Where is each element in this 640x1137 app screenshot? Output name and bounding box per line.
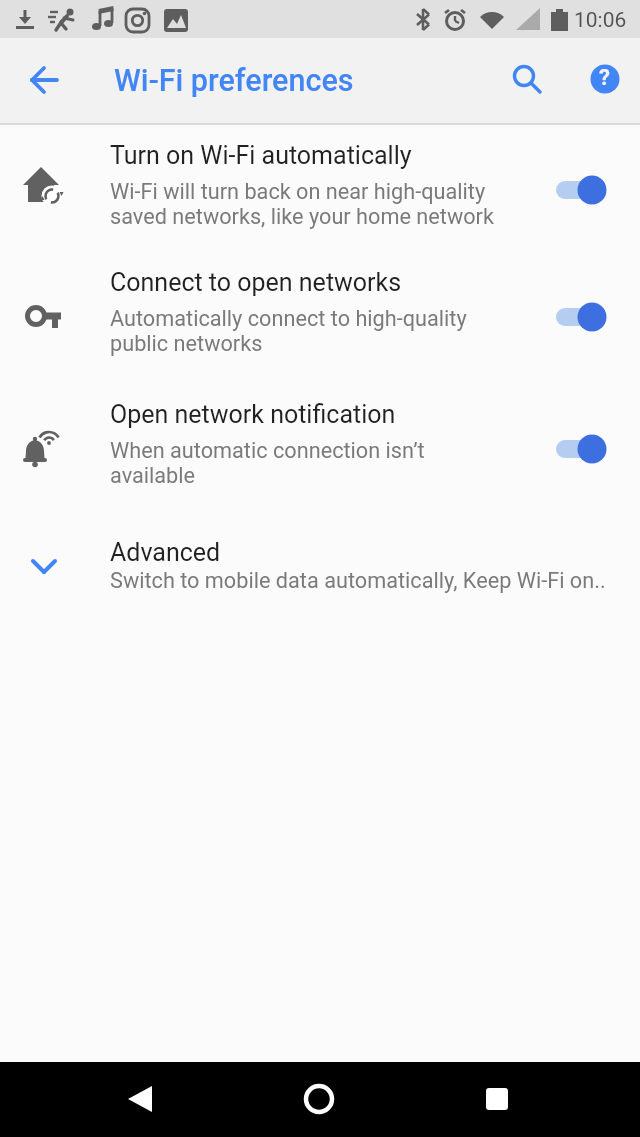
staticText: Advanced xyxy=(110,538,221,567)
staticText: Connect to open networks xyxy=(110,268,402,297)
staticText: 10:06 xyxy=(574,8,627,33)
staticText: Automatically connect to high-quality pu… xyxy=(110,306,467,356)
button[interactable]: ? xyxy=(581,55,629,103)
button[interactable]: Advanced xyxy=(0,530,640,620)
button[interactable]: Connect to open networks xyxy=(0,264,640,390)
staticText: Wi-Fi will turn back on near high-qualit… xyxy=(110,179,494,229)
staticText: Switch to mobile data automatically, Kee… xyxy=(110,568,606,593)
staticText: Wi-Fi preferences xyxy=(114,63,354,99)
button[interactable]: Turn on Wi-Fi automatically xyxy=(0,134,640,260)
staticText: When automatic connection isn’t availabl… xyxy=(110,438,425,488)
button[interactable] xyxy=(502,55,550,103)
button[interactable] xyxy=(473,1075,521,1123)
button[interactable] xyxy=(20,56,68,104)
staticText: Turn on Wi-Fi automatically xyxy=(110,141,412,170)
staticText: Open network notification xyxy=(110,400,396,429)
button[interactable] xyxy=(295,1075,343,1123)
staticText: ? xyxy=(599,65,610,91)
button[interactable] xyxy=(116,1075,164,1123)
button[interactable]: Open network notification xyxy=(0,394,640,520)
